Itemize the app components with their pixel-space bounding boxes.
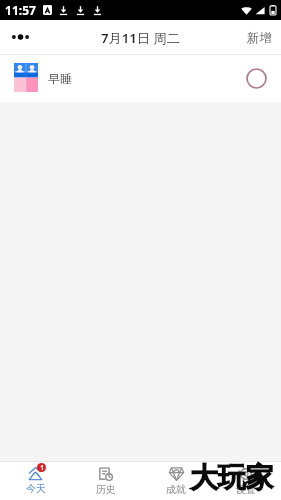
staticText: 历史 bbox=[96, 483, 116, 496]
button[interactable]: 早睡 bbox=[0, 55, 281, 102]
staticText: 大玩家 bbox=[190, 460, 274, 495]
button[interactable]: 1 bbox=[0, 462, 71, 500]
staticText: 7月11日 周二 bbox=[101, 29, 180, 47]
button[interactable]: More options bbox=[0, 20, 41, 55]
staticText: 1 bbox=[40, 463, 44, 472]
staticText: 今天 bbox=[26, 482, 46, 495]
button[interactable]: 新增 bbox=[238, 23, 281, 53]
button[interactable]: 历史 bbox=[71, 462, 141, 500]
staticText: 设置 bbox=[236, 483, 256, 496]
button[interactable]: 成就 bbox=[141, 462, 211, 500]
button[interactable]: 设置 bbox=[211, 462, 281, 500]
staticText: 成就 bbox=[166, 483, 186, 496]
staticText: 11:57 bbox=[5, 2, 36, 18]
staticText: 新增 bbox=[247, 30, 272, 46]
staticText: 早睡 bbox=[48, 71, 72, 86]
